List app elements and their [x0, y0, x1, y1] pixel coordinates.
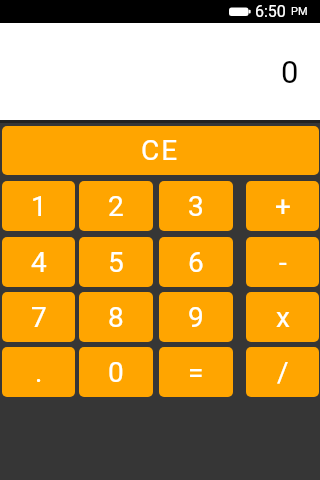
staticText: 9 [188, 301, 204, 334]
button[interactable]: 5 [79, 237, 153, 287]
button[interactable]: + [246, 181, 319, 231]
button[interactable]: 8 [79, 292, 153, 342]
staticText: 0 [108, 356, 124, 389]
staticText: 1 [31, 190, 47, 223]
staticText: 0 [281, 54, 299, 90]
staticText: / [277, 356, 289, 389]
staticText: PM [291, 5, 308, 18]
staticText: . [35, 356, 43, 389]
staticText: 6:50 [255, 2, 286, 21]
staticText: 4 [31, 246, 47, 279]
staticText: x [276, 301, 290, 334]
staticText: = [188, 356, 204, 389]
staticText: - [279, 246, 287, 279]
staticText: 8 [108, 301, 124, 334]
staticText: + [275, 190, 291, 223]
button[interactable]: / [246, 347, 319, 397]
staticText: 3 [188, 190, 204, 223]
button[interactable]: CE [2, 126, 319, 175]
button[interactable]: 9 [159, 292, 233, 342]
button[interactable]: 2 [79, 181, 153, 231]
button[interactable]: 7 [2, 292, 75, 342]
button[interactable]: 1 [2, 181, 75, 231]
button[interactable]: 4 [2, 237, 75, 287]
staticText: 2 [108, 190, 124, 223]
button[interactable]: 3 [159, 181, 233, 231]
button[interactable]: . [2, 347, 75, 397]
button[interactable]: x [246, 292, 319, 342]
button[interactable]: 6 [159, 237, 233, 287]
staticText: 5 [108, 246, 124, 279]
button[interactable]: - [246, 237, 319, 287]
staticText: 7 [31, 301, 47, 334]
button[interactable]: = [159, 347, 233, 397]
staticText: CE [141, 134, 180, 167]
staticText: 6 [188, 246, 204, 279]
button[interactable]: 0 [79, 347, 153, 397]
